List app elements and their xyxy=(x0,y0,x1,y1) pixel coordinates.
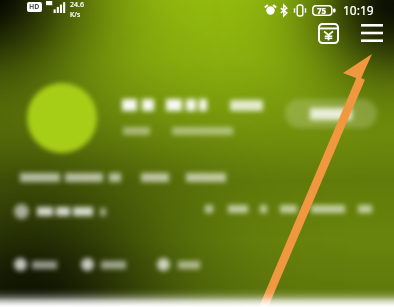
button[interactable] xyxy=(81,258,126,271)
staticText: 24.6 xyxy=(70,0,84,10)
button[interactable]: Profile picture xyxy=(27,83,97,153)
button[interactable] xyxy=(285,99,377,128)
button[interactable]: Red packet xyxy=(312,18,344,48)
button[interactable] xyxy=(14,204,106,219)
staticText: 75 xyxy=(317,5,327,16)
staticText: K/s xyxy=(70,10,81,18)
staticText: 10:19 xyxy=(343,2,374,18)
staticText: HD xyxy=(29,2,40,12)
button[interactable]: Menu xyxy=(356,18,388,48)
button[interactable] xyxy=(14,258,57,271)
button[interactable] xyxy=(157,258,200,271)
